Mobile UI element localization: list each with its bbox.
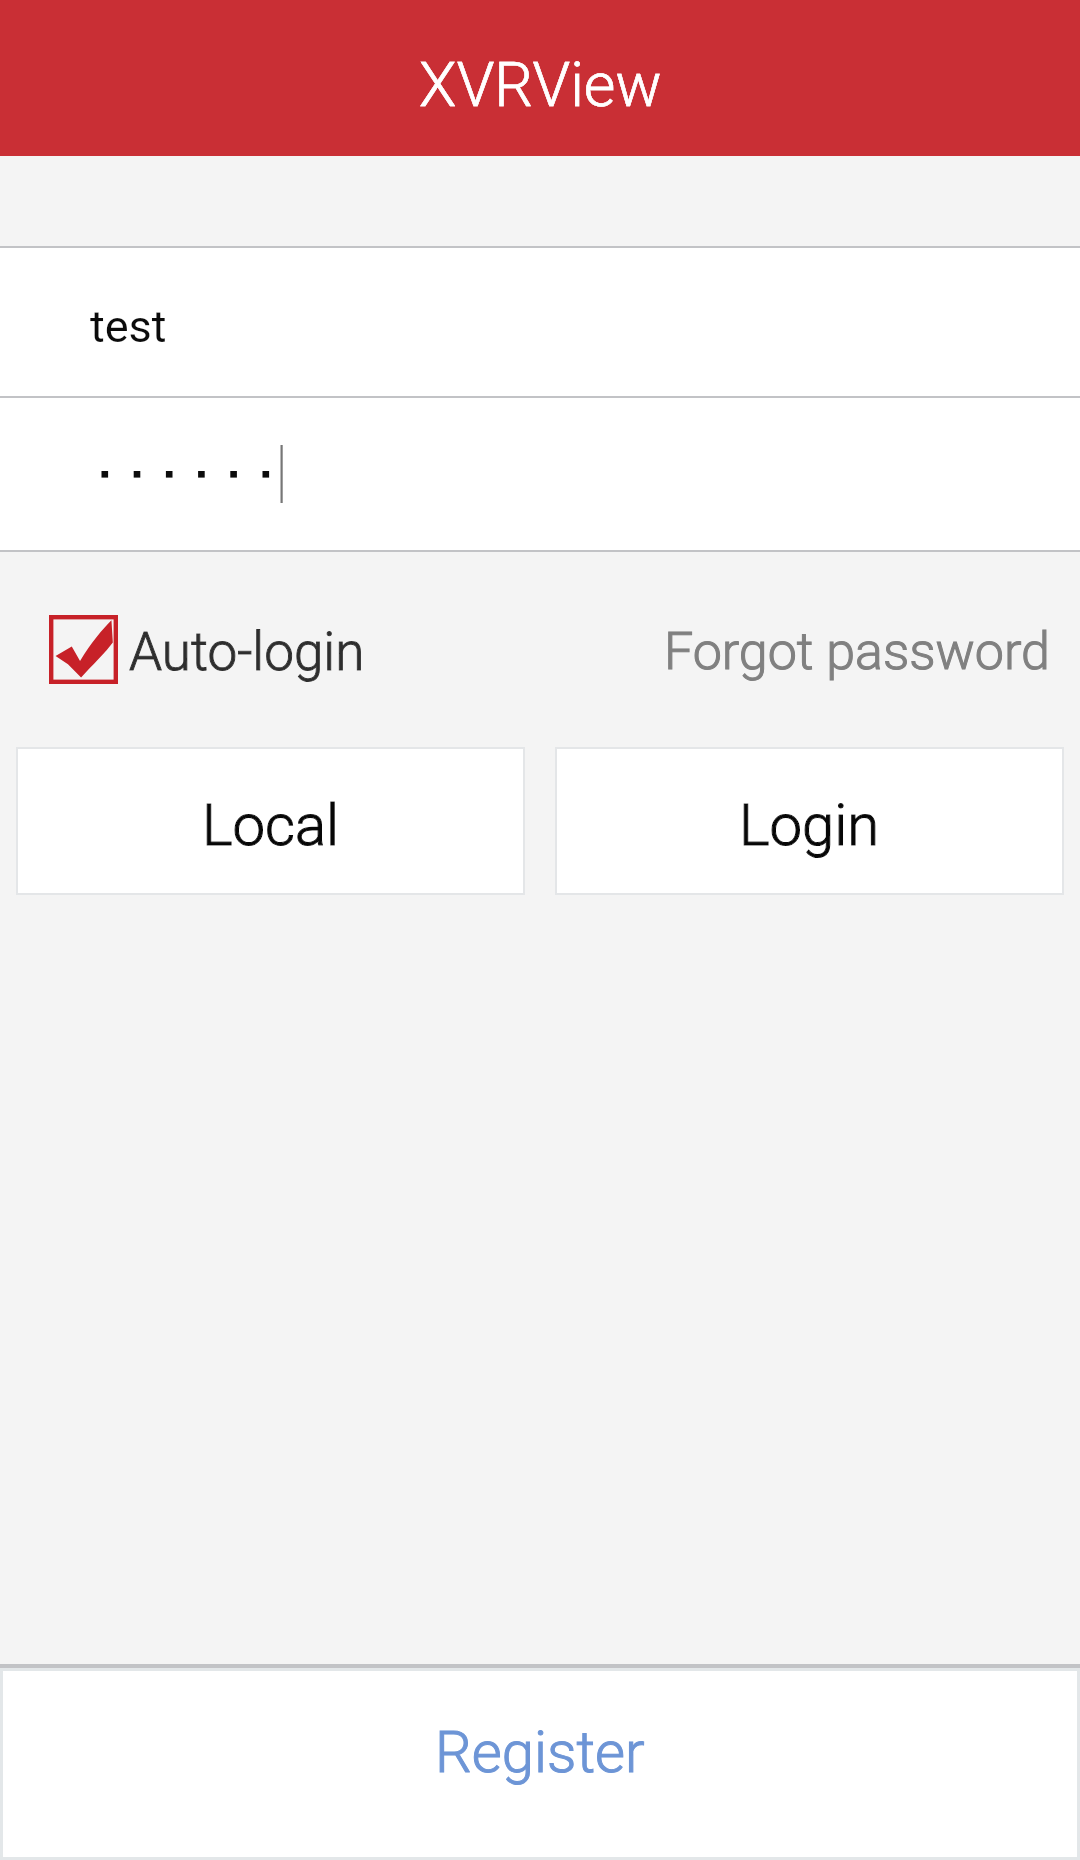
staticText: Register bbox=[435, 1718, 645, 1786]
staticText: XVRView bbox=[419, 49, 662, 120]
staticText: Forgot password bbox=[664, 621, 1050, 682]
staticText: Login bbox=[739, 791, 880, 859]
button[interactable]: Local bbox=[16, 747, 525, 895]
staticText: XVRView bbox=[419, 49, 662, 120]
staticText: Auto-login bbox=[129, 621, 365, 683]
button[interactable]: Password bbox=[0, 398, 1080, 550]
button[interactable]: test bbox=[0, 248, 1080, 396]
button[interactable]: Forgot password bbox=[664, 621, 1050, 682]
staticText: test bbox=[90, 300, 167, 353]
button[interactable]: Login bbox=[555, 747, 1064, 895]
staticText: Local bbox=[202, 791, 340, 859]
button[interactable]: Auto-login checkbox bbox=[49, 615, 365, 684]
staticText: Forgot password bbox=[664, 621, 1050, 682]
staticText: Local bbox=[202, 791, 340, 859]
other: Auto-login checkbox bbox=[49, 615, 118, 684]
staticText: Login bbox=[739, 791, 880, 859]
button[interactable]: Register bbox=[0, 1668, 1080, 1860]
staticText: Auto-login bbox=[129, 621, 365, 683]
staticText: Register bbox=[435, 1718, 645, 1786]
